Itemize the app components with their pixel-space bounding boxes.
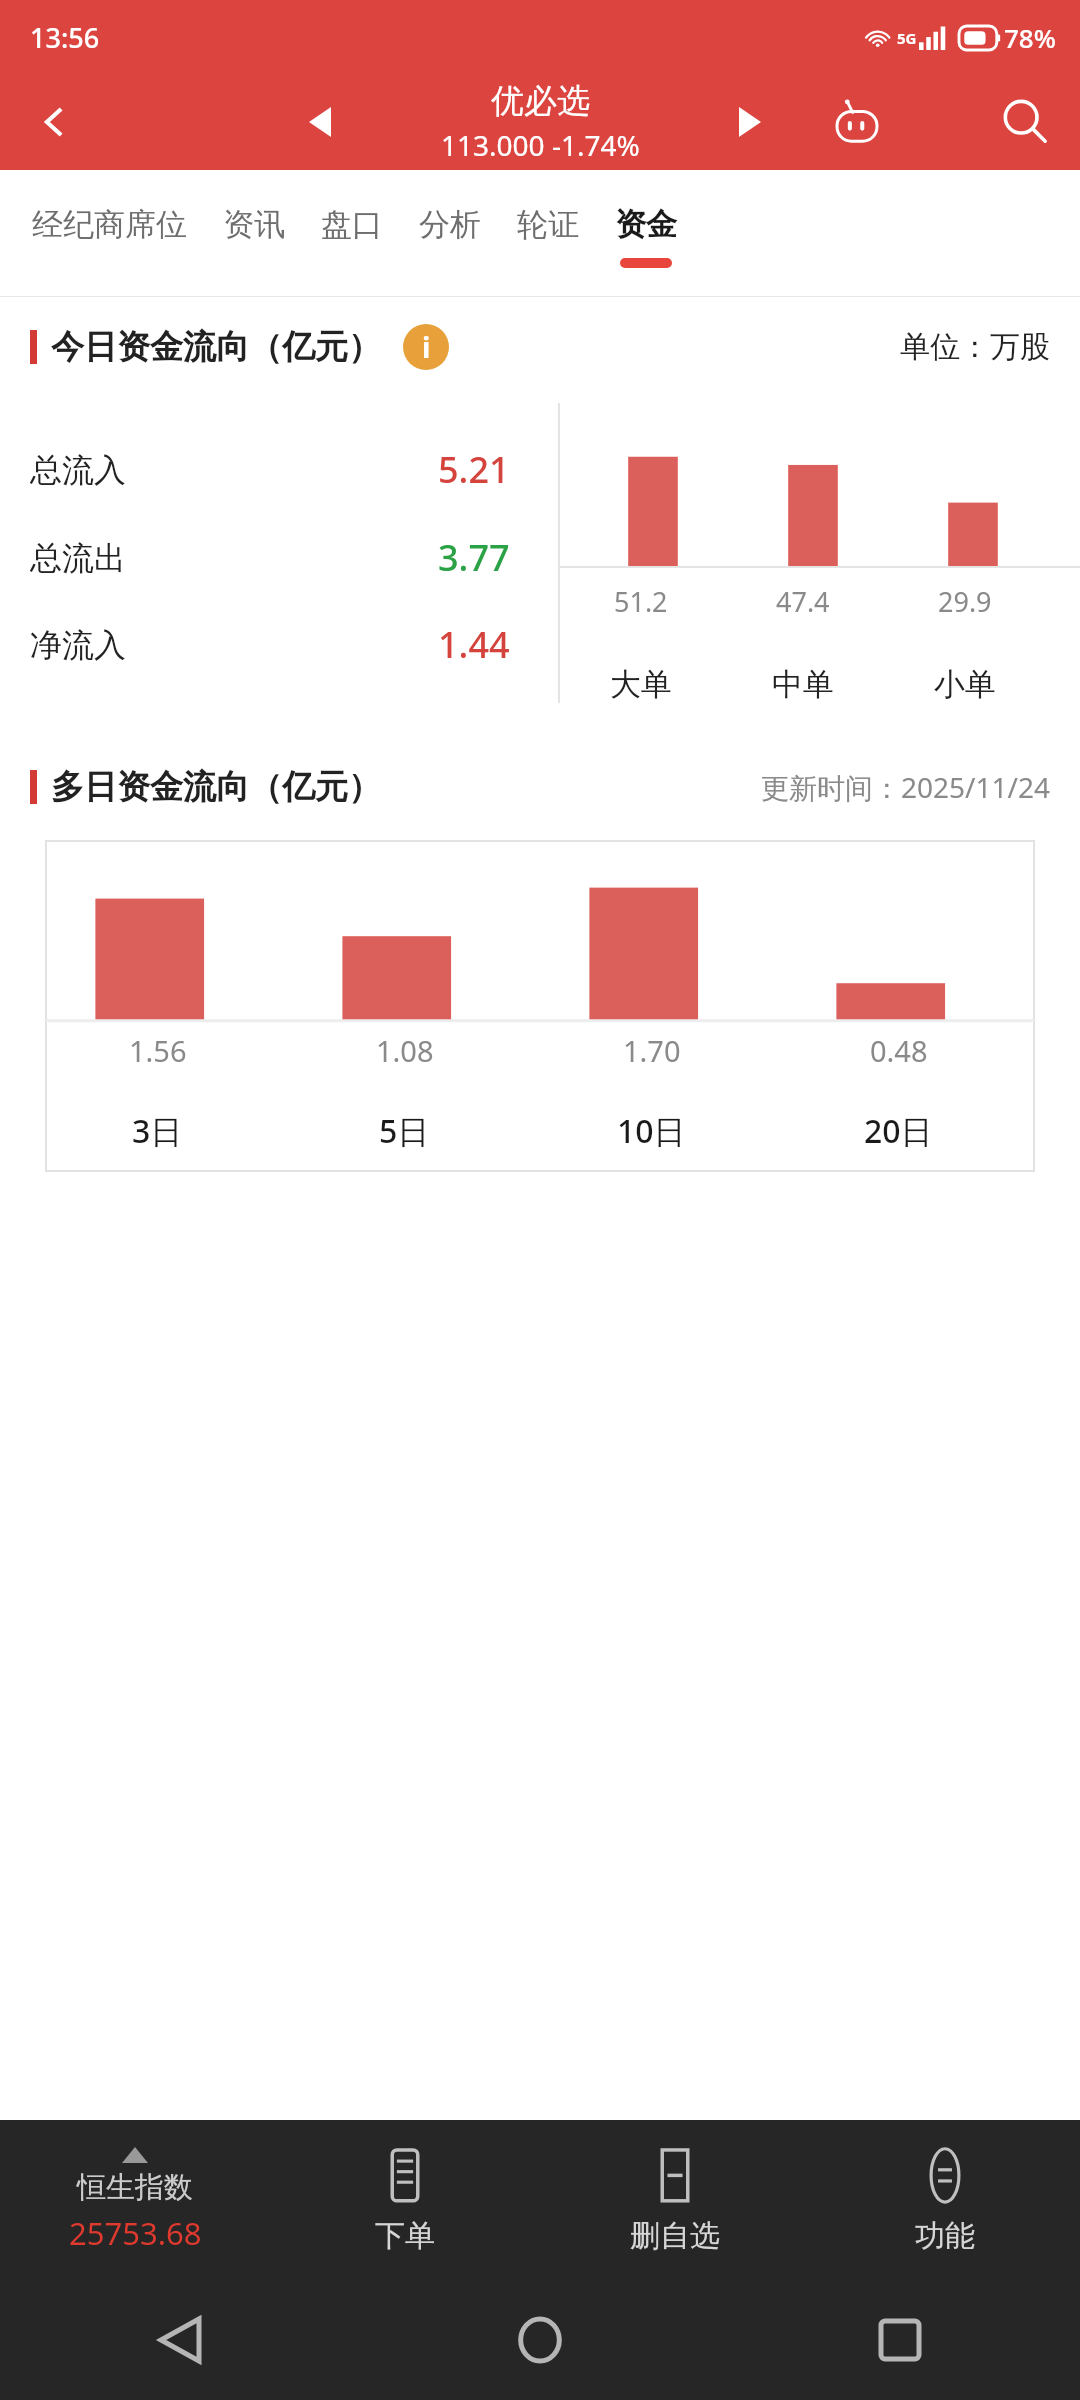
- staticText: 5G: [897, 28, 917, 48]
- staticText: 下单: [375, 2217, 435, 2255]
- staticText: 5.21: [438, 445, 510, 494]
- staticText: 资金: [615, 205, 677, 244]
- staticText: 10日: [617, 1109, 686, 1153]
- button[interactable]: AI assistant: [812, 77, 902, 167]
- staticText: 5日: [379, 1109, 430, 1153]
- staticText: 113.000 -1.74%: [441, 126, 640, 164]
- staticText: 总流出: [30, 538, 126, 578]
- button[interactable]: Search: [970, 74, 1080, 170]
- button[interactable]: 分析: [419, 170, 481, 296]
- staticText: 盘口: [321, 205, 383, 244]
- staticText: 总流入: [30, 450, 126, 490]
- button[interactable]: Back: [0, 2280, 360, 2400]
- staticText: 大单: [610, 665, 672, 704]
- staticText: 1.44: [438, 620, 510, 669]
- button[interactable]: Back: [0, 74, 110, 170]
- staticText: 0.48: [870, 1031, 928, 1070]
- staticText: 20日: [864, 1109, 933, 1153]
- staticText: 1.56: [129, 1031, 187, 1070]
- staticText: 1.70: [623, 1031, 681, 1070]
- staticText: 恒生指数: [77, 2169, 193, 2206]
- button[interactable]: 功能: [810, 2120, 1080, 2280]
- staticText: 净流入: [30, 625, 126, 665]
- staticText: 25753.68: [69, 2212, 202, 2254]
- button[interactable]: Recent apps: [720, 2280, 1080, 2400]
- button[interactable]: Home: [360, 2280, 720, 2400]
- button[interactable]: Next stock: [715, 87, 785, 157]
- staticText: 经纪商席位: [32, 205, 187, 244]
- button[interactable]: 经纪商席位: [32, 170, 187, 296]
- staticText: 功能: [915, 2217, 975, 2255]
- staticText: 3.77: [438, 533, 510, 582]
- staticText: 优必选: [491, 80, 590, 122]
- staticText: 小单: [934, 665, 996, 704]
- staticText: 今日资金流向（亿元）: [51, 326, 381, 368]
- button[interactable]: 恒生指数: [0, 2120, 270, 2280]
- staticText: 分析: [419, 205, 481, 244]
- staticText: 轮证: [517, 205, 579, 244]
- staticText: 29.9: [938, 583, 992, 620]
- button[interactable]: 下单: [270, 2120, 540, 2280]
- button[interactable]: 资金: [615, 170, 677, 296]
- button[interactable]: Previous stock: [285, 87, 355, 157]
- button[interactable]: 删自选: [540, 2120, 810, 2280]
- staticText: 13:56: [30, 19, 100, 56]
- staticText: 78%: [1004, 20, 1056, 55]
- staticText: 中单: [772, 665, 834, 704]
- staticText: 资讯: [223, 205, 285, 244]
- button[interactable]: 资讯: [223, 170, 285, 296]
- button[interactable]: 盘口: [321, 170, 383, 296]
- staticText: 更新时间：2025/11/24: [761, 768, 1050, 806]
- button[interactable]: Info: [403, 324, 449, 370]
- staticText: i: [422, 328, 431, 366]
- staticText: 删自选: [630, 2217, 720, 2255]
- staticText: 3日: [132, 1109, 183, 1153]
- staticText: 1.08: [376, 1031, 434, 1070]
- button[interactable]: 轮证: [517, 170, 579, 296]
- staticText: 多日资金流向（亿元）: [51, 766, 381, 808]
- staticText: 47.4: [776, 583, 830, 620]
- staticText: 51.2: [614, 583, 668, 620]
- staticText: 单位：万股: [900, 328, 1050, 366]
